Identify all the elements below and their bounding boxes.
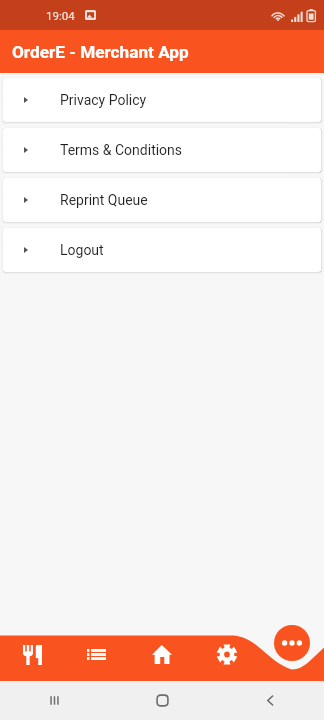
button[interactable]: Orders list xyxy=(64,632,129,677)
staticText: 19:04 xyxy=(46,9,75,22)
button[interactable]: More options xyxy=(274,625,310,661)
button[interactable]: Restaurant xyxy=(0,632,64,677)
button[interactable]: Terms & Conditions xyxy=(3,128,321,172)
button[interactable]: OrderE - Merchant App xyxy=(0,30,324,73)
button[interactable]: Home xyxy=(108,681,216,720)
button[interactable]: Home xyxy=(129,632,194,677)
button[interactable]: Recent apps xyxy=(0,681,108,720)
button[interactable]: Reprint Queue xyxy=(3,178,321,222)
button[interactable]: Logout xyxy=(3,228,321,272)
button[interactable]: Settings xyxy=(194,632,259,677)
staticText: Reprint Queue xyxy=(60,192,148,208)
staticText: Privacy Policy xyxy=(60,92,147,108)
staticText: OrderE - Merchant App xyxy=(12,42,189,62)
staticText: Terms & Conditions xyxy=(60,142,183,158)
button[interactable]: Privacy Policy xyxy=(3,78,321,122)
staticText: Logout xyxy=(60,242,104,258)
button[interactable]: Back xyxy=(216,681,324,720)
